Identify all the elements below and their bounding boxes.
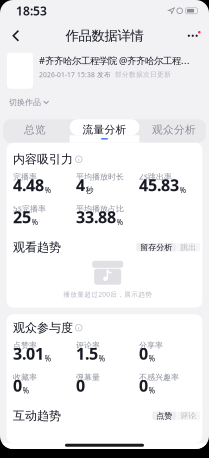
staticText: 1.5 <box>76 343 98 364</box>
staticText: 总览 <box>24 123 46 136</box>
button[interactable]: 切换作品 <box>9 94 49 110</box>
staticText: 分享率 <box>139 340 163 350</box>
button[interactable]: 返回 <box>5 24 27 48</box>
staticText: 秒 <box>85 185 93 195</box>
staticText: 完播率 <box>13 172 37 182</box>
staticText: 切换作品 <box>9 97 41 107</box>
button[interactable]: 点赞 <box>152 411 176 420</box>
staticText: 观看趋势 <box>13 240 61 255</box>
button[interactable]: 跳出 <box>176 243 200 251</box>
button[interactable]: 总览 <box>0 119 70 143</box>
staticText: % <box>117 216 124 227</box>
staticText: 33.88 <box>76 206 116 228</box>
staticText: 0 <box>76 375 85 396</box>
staticText: 内容吸引力 <box>13 152 73 167</box>
staticText: 4.48 <box>13 174 44 196</box>
staticText: 留存分析 <box>140 242 172 252</box>
staticText: % <box>23 385 30 396</box>
staticText: 作品数据详情 <box>65 28 143 44</box>
button[interactable]: 观众分析 <box>139 119 209 143</box>
staticText: % <box>149 353 156 364</box>
staticText: 播放量超过200后，展示趋势 <box>63 290 152 299</box>
staticText: % <box>45 184 52 195</box>
staticText: 观众分析 <box>152 123 196 136</box>
staticText: 2s跳出率 <box>139 171 172 182</box>
staticText: 4 <box>76 174 85 196</box>
staticText: 部分数据次日更新 <box>115 70 171 79</box>
staticText: 3.01 <box>13 343 44 364</box>
staticText: 弹幕量 <box>76 372 100 382</box>
staticText: 点赞 <box>156 411 172 421</box>
staticText: % <box>32 216 39 227</box>
staticText: 5s完播率 <box>13 203 46 214</box>
staticText: % <box>45 353 52 364</box>
button[interactable]: #齐齐哈尔工程学院 @齐齐哈尔工程学院品... <box>0 50 209 93</box>
staticText: 2026-01-17 15:38 发布 <box>39 70 111 79</box>
staticText: 流量分析 <box>82 123 126 136</box>
staticText: 25 <box>13 206 31 228</box>
button[interactable]: 流量分析 <box>70 119 139 143</box>
staticText: 18:53 <box>16 3 47 19</box>
button[interactable]: 评论 <box>176 411 200 420</box>
staticText: 互动趋势 <box>13 408 61 423</box>
staticText: #齐齐哈尔工程学院 @齐齐哈尔工程学院品... <box>39 54 196 67</box>
staticText: 评论率 <box>76 340 100 350</box>
staticText: 点赞率 <box>13 340 37 350</box>
staticText: 平均播放时长 <box>76 172 124 182</box>
staticText: % <box>149 385 156 396</box>
staticText: 收藏率 <box>13 372 37 382</box>
button[interactable]: 更多 <box>181 28 204 44</box>
staticText: 0 <box>139 375 148 396</box>
staticText: 平均播放占比 <box>76 204 124 214</box>
staticText: 0 <box>139 343 148 364</box>
button[interactable]: 留存分析 <box>136 243 176 251</box>
staticText: % <box>180 184 187 195</box>
staticText: 不感兴趣率 <box>139 372 179 382</box>
staticText: 0 <box>13 375 22 396</box>
staticText: 观众参与度 <box>13 320 73 335</box>
staticText: % <box>99 353 106 364</box>
staticText: 评论 <box>180 411 196 421</box>
staticText: 跳出 <box>180 242 196 252</box>
staticText: 45.83 <box>139 174 179 196</box>
